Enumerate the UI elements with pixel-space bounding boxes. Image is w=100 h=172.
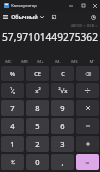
- staticText: 3: [60, 139, 65, 149]
- button[interactable]: =: [76, 154, 99, 170]
- button[interactable]: 8: [26, 100, 49, 116]
- button[interactable]: M+: [32, 56, 49, 65]
- staticText: 4: [10, 121, 15, 131]
- button[interactable]: 2: [26, 136, 49, 152]
- button[interactable]: Menu: [1, 12, 10, 21]
- staticText: MR: [21, 58, 28, 64]
- staticText: ²√x: [58, 87, 68, 95]
- button[interactable]: MR: [16, 56, 32, 65]
- staticText: 48000 ÷ 828 =: [70, 23, 98, 29]
- button[interactable]: Plus minus: [1, 154, 24, 170]
- staticText: Калькулятор: [11, 3, 37, 9]
- button[interactable]: 1: [1, 136, 24, 152]
- staticText: x²: [35, 87, 41, 95]
- button[interactable]: 5: [26, 118, 49, 134]
- button[interactable]: M˅: [83, 56, 100, 65]
- staticText: %: [10, 70, 15, 78]
- button[interactable]: Backspace: [76, 66, 99, 81]
- staticText: CE: [34, 70, 41, 78]
- staticText: M+: [37, 58, 44, 64]
- button[interactable]: C: [51, 66, 74, 81]
- staticText: 7: [10, 103, 15, 113]
- staticText: MS: [71, 58, 78, 64]
- staticText: M-: [55, 58, 61, 64]
- staticText: C: [61, 70, 65, 78]
- button[interactable]: ,: [51, 154, 74, 170]
- button[interactable]: 3: [51, 136, 74, 152]
- button[interactable]: History: [88, 12, 98, 22]
- staticText: 6: [60, 121, 65, 131]
- staticText: 57,97101449275362: [2, 30, 98, 44]
- button[interactable]: %: [1, 66, 24, 81]
- staticText: Обычный: [11, 13, 38, 20]
- button[interactable]: MS: [66, 56, 83, 65]
- button[interactable]: MC: [0, 56, 16, 65]
- staticText: 2: [35, 139, 40, 149]
- button[interactable]: Multiply: [76, 100, 99, 116]
- button[interactable]: ²√x: [51, 83, 74, 98]
- button[interactable]: 9: [51, 100, 74, 116]
- staticText: 0: [35, 157, 40, 167]
- button[interactable]: Minus: [76, 118, 99, 134]
- button[interactable]: 7: [1, 100, 24, 116]
- staticText: M˅: [89, 58, 95, 64]
- button[interactable]: Close: [89, 0, 100, 11]
- staticText: 1: [10, 139, 15, 149]
- button[interactable]: Plus: [76, 136, 99, 152]
- button[interactable]: Minimize: [65, 0, 77, 11]
- staticText: 5: [35, 121, 40, 131]
- button[interactable]: 6: [51, 118, 74, 134]
- button[interactable]: CE: [26, 66, 49, 81]
- button[interactable]: 0: [26, 154, 49, 170]
- staticText: ¹⁄ₓ: [10, 87, 15, 95]
- button[interactable]: Divide: [76, 83, 99, 98]
- staticText: MC: [5, 58, 12, 64]
- button[interactable]: Keep on top: [49, 12, 58, 21]
- button[interactable]: x²: [26, 83, 49, 98]
- button[interactable]: 4: [1, 118, 24, 134]
- staticText: =: [85, 157, 90, 167]
- button[interactable]: M-: [49, 56, 66, 65]
- staticText: ,: [61, 157, 64, 167]
- staticText: 9: [60, 103, 65, 113]
- button[interactable]: ¹⁄ₓ: [1, 83, 24, 98]
- staticText: 8: [35, 103, 40, 113]
- button[interactable]: Maximize: [77, 0, 89, 11]
